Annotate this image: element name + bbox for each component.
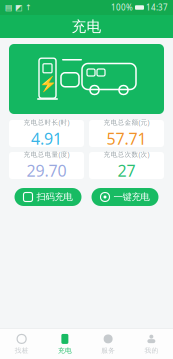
staticText: ↑	[25, 3, 32, 12]
button[interactable]: 充电	[43, 329, 86, 359]
staticText: ▤	[5, 3, 13, 12]
staticText: 充电总时长(时)	[23, 118, 69, 127]
staticText: 服务	[101, 346, 115, 355]
button[interactable]: 找桩	[0, 329, 43, 359]
staticText: 扫码充电	[36, 191, 72, 203]
staticText: 充电总电量(度)	[23, 150, 69, 159]
staticText: ◩	[15, 3, 23, 12]
staticText: 57.71	[106, 128, 146, 149]
staticText: 充电总次数(次)	[103, 150, 149, 159]
staticText: 找桩	[15, 346, 29, 355]
staticText: 我的	[144, 346, 158, 355]
staticText: 29.70	[26, 160, 66, 181]
staticText: 充电	[58, 346, 72, 355]
button[interactable]: 扫码充电	[14, 188, 81, 206]
staticText: 27	[117, 160, 135, 181]
staticText: 4.91	[31, 128, 62, 149]
staticText: 一键充电	[113, 191, 149, 203]
button[interactable]: 我的	[130, 329, 173, 359]
staticText: 100%	[111, 2, 133, 13]
button[interactable]: 一键充电	[91, 188, 158, 206]
staticText: ⚡	[38, 76, 56, 93]
staticText: 充电	[71, 17, 101, 35]
button[interactable]: 服务	[86, 329, 130, 359]
staticText: 14:37	[146, 2, 168, 13]
staticText: 充电总金额(元)	[103, 118, 149, 127]
